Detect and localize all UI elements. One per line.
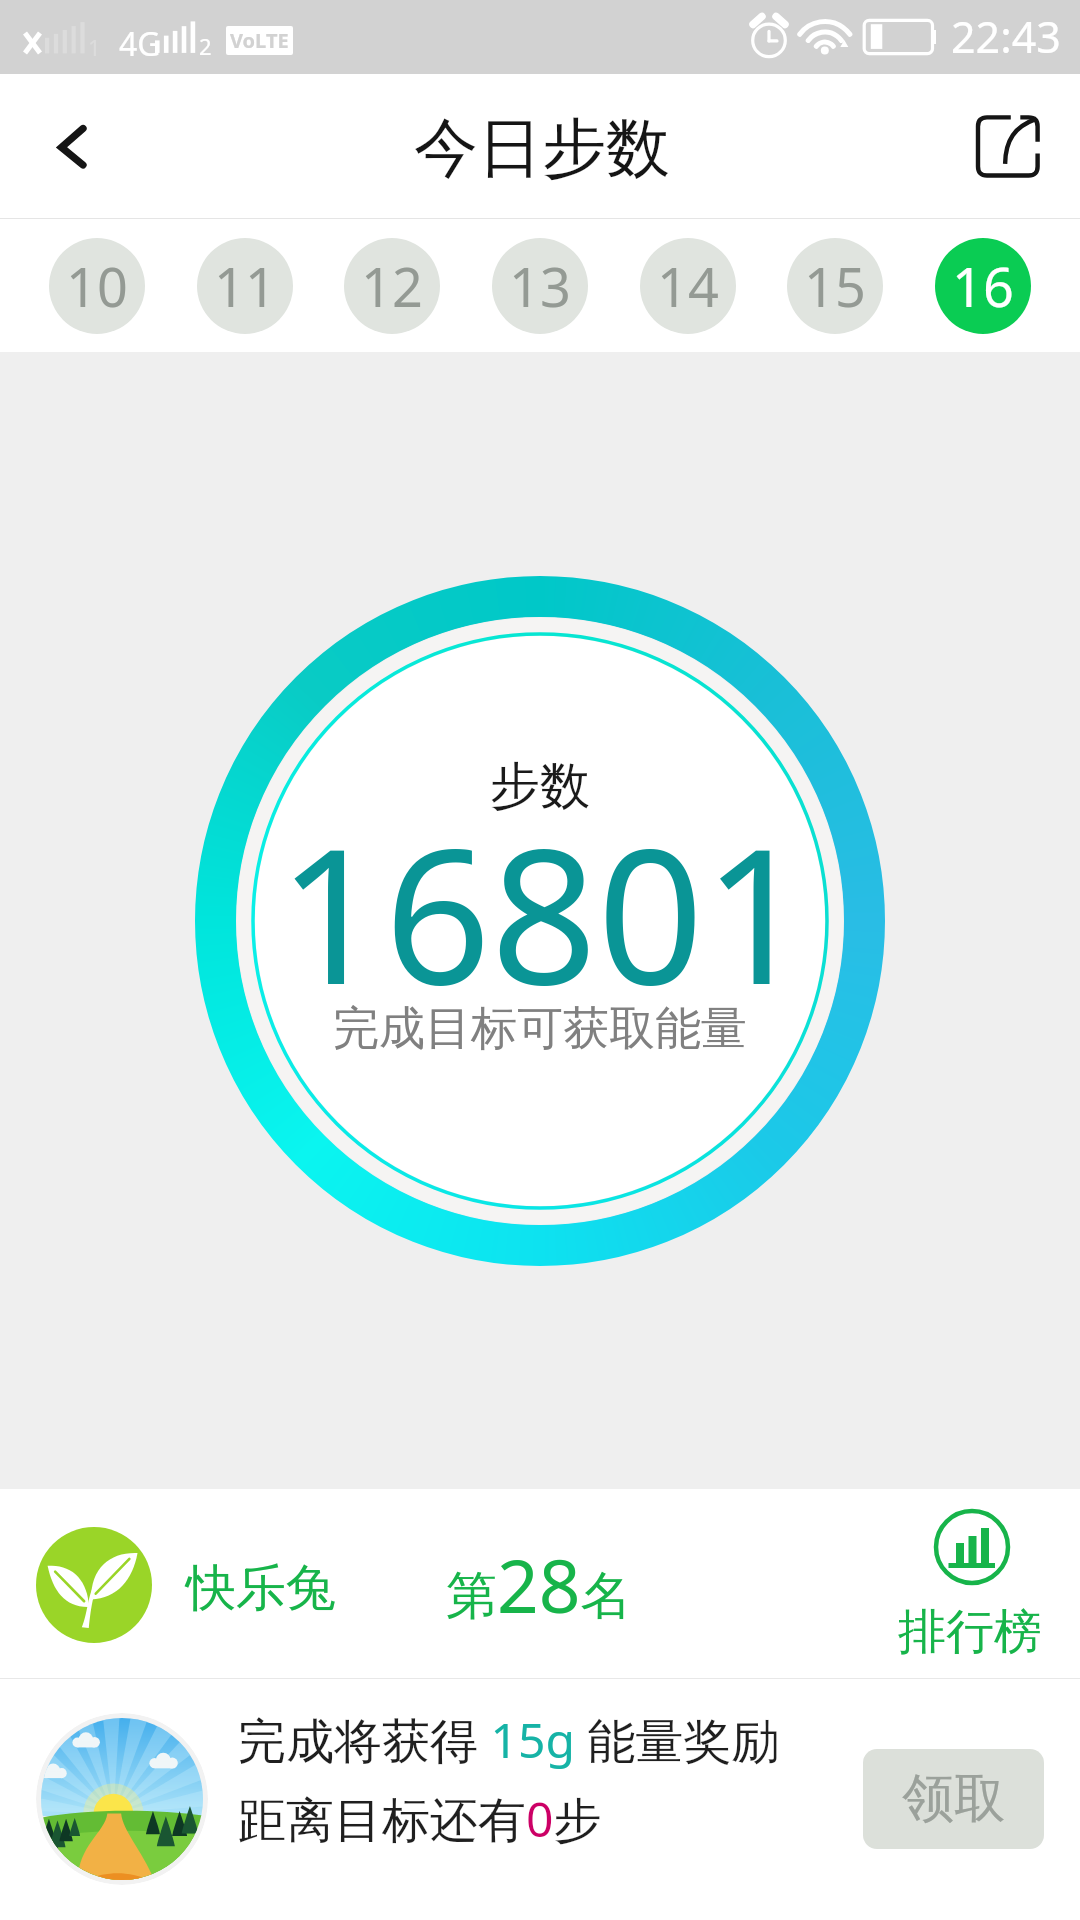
button[interactable]: Reward xyxy=(36,1713,208,1885)
staticText: 4G xyxy=(119,22,161,66)
staticText: VoLTE xyxy=(230,27,289,54)
button[interactable]: 15 xyxy=(787,238,883,334)
staticText: 快乐兔 xyxy=(186,1557,336,1620)
button[interactable]: Share xyxy=(950,74,1080,219)
staticText: 步数 xyxy=(490,755,590,818)
button[interactable]: 11 xyxy=(197,238,293,334)
button[interactable]: 排行榜 xyxy=(890,1489,1055,1679)
staticText: 12 xyxy=(361,249,423,323)
staticText: 14 xyxy=(657,249,719,323)
staticText: 16801 xyxy=(278,785,810,1038)
button[interactable]: 16 xyxy=(935,238,1031,334)
button[interactable]: Back xyxy=(0,74,136,219)
staticText: 2 xyxy=(199,31,212,61)
button[interactable]: 10 xyxy=(49,238,145,334)
staticText: 15 xyxy=(804,249,866,323)
staticText: 22:43 xyxy=(951,7,1061,66)
staticText: 第28名 xyxy=(446,1535,632,1634)
staticText: 距离目标还有0步 xyxy=(238,1786,602,1852)
button[interactable]: 13 xyxy=(492,238,588,334)
button[interactable]: Avatar xyxy=(36,1527,152,1643)
staticText: 排行榜 xyxy=(898,1602,1042,1662)
button[interactable]: 14 xyxy=(640,238,736,334)
staticText: 完成将获得 15g 能量奖励 xyxy=(238,1707,780,1773)
staticText: 今日步数 xyxy=(414,108,670,189)
button[interactable]: 12 xyxy=(344,238,440,334)
staticText: 16 xyxy=(952,249,1014,323)
button[interactable]: 领取 xyxy=(863,1749,1044,1849)
staticText: 11 xyxy=(214,249,276,323)
staticText: 10 xyxy=(66,249,128,323)
staticText: 完成目标可获取能量 xyxy=(333,1000,747,1058)
staticText: 13 xyxy=(509,249,571,323)
staticText: 领取 xyxy=(902,1766,1006,1832)
